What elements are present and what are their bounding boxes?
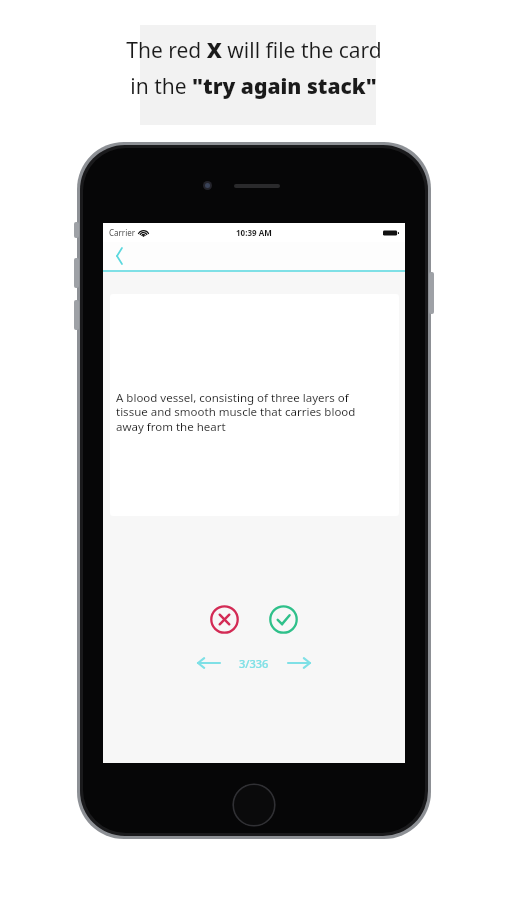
button[interactable]: Previous card — [196, 653, 222, 673]
button[interactable]: Home — [232, 783, 276, 827]
staticText: A blood vessel, consisting of three laye… — [116, 390, 378, 435]
staticText: The red X will file the card — [126, 36, 382, 65]
button[interactable]: Next card — [286, 653, 312, 673]
button[interactable]: Mark incorrect — [210, 605, 239, 634]
staticText: in the "try again stack" — [130, 72, 377, 101]
staticText: 3/336 — [239, 656, 269, 671]
button[interactable]: A blood vessel, consisting of three laye… — [110, 294, 399, 516]
button[interactable]: Back — [107, 243, 131, 269]
staticText: 10:39 AM — [236, 227, 272, 238]
button[interactable]: Mark correct — [269, 605, 298, 634]
staticText: Carrier — [109, 227, 136, 238]
